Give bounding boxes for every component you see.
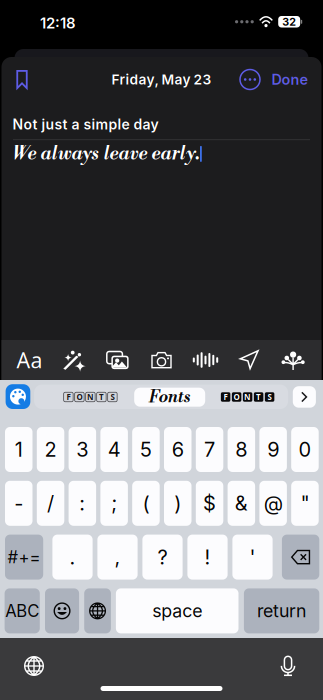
staticText: 1 xyxy=(15,437,23,462)
button[interactable]: More fonts xyxy=(293,386,316,408)
staticText: 5 xyxy=(140,437,152,462)
staticText: Not just a simple day xyxy=(12,116,158,133)
staticText: 8 xyxy=(235,437,247,462)
button[interactable]: 6 xyxy=(164,427,191,472)
button[interactable]: F xyxy=(61,386,119,408)
staticText: , xyxy=(114,545,120,569)
staticText: F xyxy=(224,392,228,402)
button[interactable]: : xyxy=(69,481,96,526)
staticText: We always leave early. xyxy=(12,142,199,165)
staticText: 2 xyxy=(44,437,56,462)
staticText: : xyxy=(79,491,85,515)
staticText: S xyxy=(110,392,114,402)
button[interactable]: space xyxy=(116,588,238,633)
staticText: F xyxy=(66,392,70,402)
staticText: Friday, May 23 xyxy=(111,71,211,88)
button[interactable]: More options xyxy=(233,62,267,96)
staticText: T xyxy=(256,392,261,402)
button[interactable]: Effects xyxy=(275,340,311,380)
staticText: O xyxy=(234,392,240,402)
button[interactable]: $ xyxy=(196,481,223,526)
staticText: N xyxy=(87,392,94,402)
button[interactable]: Send xyxy=(231,340,267,380)
button[interactable]: " xyxy=(291,481,319,526)
button[interactable]: ! xyxy=(187,535,228,580)
button[interactable]: #+= xyxy=(5,535,43,580)
button[interactable]: 9 xyxy=(259,427,287,472)
staticText: O xyxy=(76,392,82,402)
staticText: 9 xyxy=(267,437,279,462)
staticText: 32 xyxy=(282,15,296,28)
staticText: ' xyxy=(249,545,255,569)
staticText: Aa xyxy=(16,346,42,374)
button[interactable]: 0 xyxy=(291,427,319,472)
staticText: / xyxy=(47,491,54,515)
staticText: . xyxy=(69,545,75,569)
button[interactable]: ' xyxy=(232,535,273,580)
button[interactable]: Delete xyxy=(282,535,319,580)
staticText: 4 xyxy=(108,437,121,462)
staticText: @ xyxy=(264,491,283,515)
button[interactable]: ? xyxy=(142,535,183,580)
staticText: S xyxy=(268,392,272,402)
staticText: space xyxy=(152,600,202,622)
staticText: ) xyxy=(174,491,181,515)
button[interactable]: F xyxy=(218,386,277,408)
staticText: Done xyxy=(271,71,308,88)
button[interactable]: Font colour xyxy=(6,384,30,409)
staticText: T xyxy=(99,392,104,402)
button[interactable]: @ xyxy=(259,481,287,526)
button[interactable]: Next keyboard xyxy=(84,588,111,633)
button[interactable]: 4 xyxy=(100,427,128,472)
button[interactable]: Audio xyxy=(187,340,223,380)
button[interactable]: ( xyxy=(132,481,160,526)
button[interactable]: Photo library xyxy=(99,340,135,380)
button[interactable]: Markup xyxy=(55,340,91,380)
button[interactable]: ABC xyxy=(5,588,40,633)
button[interactable]: Switch keyboard xyxy=(14,646,54,686)
button[interactable]: 2 xyxy=(37,427,64,472)
staticText: N xyxy=(244,392,251,402)
staticText: $ xyxy=(203,491,216,515)
staticText: 6 xyxy=(172,437,184,462)
staticText: - xyxy=(14,491,23,515)
staticText: ? xyxy=(157,545,167,569)
button[interactable]: 7 xyxy=(196,427,223,472)
staticText: 12:18 xyxy=(40,14,76,32)
button[interactable]: & xyxy=(228,481,255,526)
staticText: #+= xyxy=(8,547,41,567)
button[interactable]: Dictate xyxy=(268,646,308,686)
button[interactable]: - xyxy=(5,481,32,526)
staticText: " xyxy=(300,491,309,515)
button[interactable]: Bookmark xyxy=(5,62,39,96)
staticText: return xyxy=(257,600,306,622)
staticText: 3 xyxy=(76,437,88,462)
staticText: & xyxy=(235,491,248,515)
button[interactable]: Text style xyxy=(11,340,47,380)
button[interactable]: Emoji xyxy=(45,588,79,633)
button[interactable]: . xyxy=(52,535,93,580)
button[interactable]: / xyxy=(37,481,64,526)
button[interactable]: Camera xyxy=(143,340,179,380)
button[interactable]: Done xyxy=(265,62,315,96)
button[interactable]: 1 xyxy=(5,427,32,472)
staticText: ; xyxy=(111,491,117,515)
staticText: Fonts xyxy=(149,387,191,408)
button[interactable]: 5 xyxy=(132,427,160,472)
staticText: ( xyxy=(142,491,149,515)
staticText: 0 xyxy=(298,437,311,462)
button[interactable]: , xyxy=(97,535,138,580)
button[interactable]: Fonts xyxy=(134,388,205,407)
button[interactable]: 8 xyxy=(228,427,255,472)
button[interactable]: ) xyxy=(164,481,191,526)
button[interactable]: return xyxy=(244,588,319,633)
staticText: ! xyxy=(204,545,210,569)
button[interactable]: ; xyxy=(100,481,128,526)
staticText: 7 xyxy=(204,437,215,462)
staticText: ABC xyxy=(5,601,39,621)
button[interactable]: 3 xyxy=(69,427,96,472)
